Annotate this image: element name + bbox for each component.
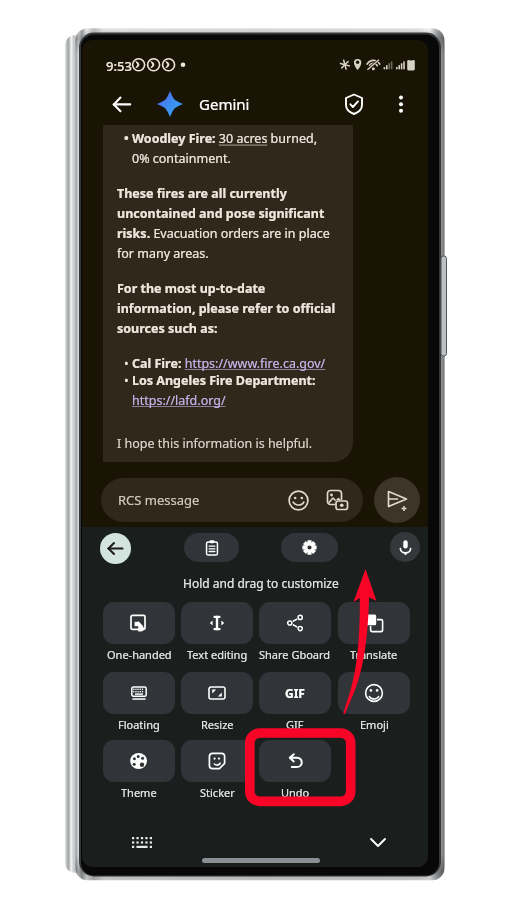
staticText: Floating bbox=[118, 717, 160, 732]
button[interactable]: Undo bbox=[259, 740, 331, 800]
staticText: Gemini bbox=[199, 94, 250, 114]
staticText: Emoji bbox=[360, 717, 389, 732]
staticText: Translate bbox=[350, 647, 398, 662]
staticText: • bbox=[124, 372, 132, 389]
button[interactable]: RCS message bbox=[101, 478, 363, 522]
staticText: • bbox=[124, 355, 132, 372]
staticText: Hold and drag to customize bbox=[183, 575, 339, 591]
button[interactable]: Back bbox=[100, 533, 131, 564]
button[interactable]: One-handed bbox=[103, 602, 175, 662]
button[interactable]: More options bbox=[385, 88, 417, 120]
staticText: GIF bbox=[285, 685, 305, 701]
staticText: Woodley Fire: 30 acres burned, 0% contai… bbox=[132, 130, 318, 167]
staticText: GIF bbox=[286, 717, 304, 732]
button[interactable]: Theme bbox=[103, 740, 175, 800]
button[interactable]: Translate bbox=[338, 602, 410, 662]
button[interactable]: Floating bbox=[103, 672, 175, 732]
staticText: Share Gboard bbox=[259, 647, 331, 662]
button[interactable]: Share Gboard bbox=[259, 602, 331, 662]
staticText: Theme bbox=[121, 785, 157, 800]
staticText: RCS message bbox=[118, 491, 200, 509]
staticText: For the most up-to-date information, ple… bbox=[117, 280, 336, 337]
staticText: One-handed bbox=[107, 647, 172, 662]
staticText: Text editing bbox=[187, 647, 248, 662]
staticText: I hope this information is helpful. bbox=[117, 435, 313, 452]
button[interactable]: GIF bbox=[259, 672, 331, 732]
button[interactable]: Keyboard bbox=[128, 828, 156, 856]
button[interactable]: Back bbox=[106, 88, 138, 120]
staticText: Resize bbox=[201, 717, 234, 732]
staticText: 9:53 bbox=[106, 57, 132, 75]
button[interactable]: Hide keyboard bbox=[364, 828, 392, 856]
button[interactable]: Privacy bbox=[338, 88, 370, 120]
button[interactable]: Send bbox=[374, 477, 420, 523]
button[interactable]: Voice input bbox=[390, 532, 420, 562]
staticText: Sticker bbox=[200, 785, 235, 800]
button[interactable]: Sticker bbox=[181, 740, 253, 800]
staticText: Cal Fire: https://www.fire.ca.gov/ bbox=[132, 355, 326, 372]
button[interactable]: Emoji bbox=[338, 672, 410, 732]
button[interactable]: Text editing bbox=[181, 602, 253, 662]
button[interactable]: Clipboard bbox=[184, 533, 239, 562]
button[interactable]: Settings bbox=[281, 533, 338, 562]
button[interactable]: Resize bbox=[181, 672, 253, 732]
staticText: Undo bbox=[281, 785, 310, 800]
staticText: Los Angeles Fire Department: https://laf… bbox=[132, 372, 341, 409]
staticText: • bbox=[124, 130, 132, 147]
staticText: These fires are all currently uncontaine… bbox=[117, 185, 330, 262]
